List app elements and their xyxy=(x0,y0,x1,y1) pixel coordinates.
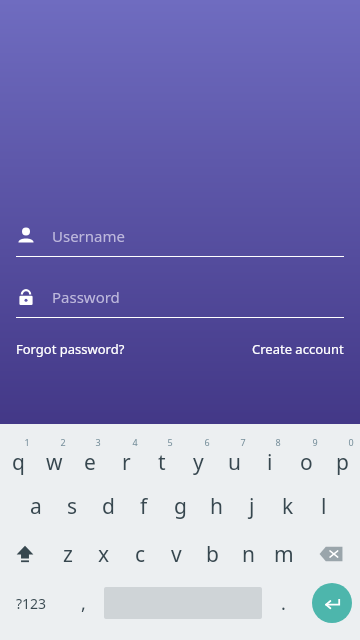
button[interactable]: n xyxy=(230,530,266,578)
button[interactable]: l xyxy=(306,482,342,530)
button[interactable]: Enter xyxy=(312,583,352,623)
staticText: s xyxy=(67,492,78,521)
staticText: p xyxy=(336,448,349,477)
button[interactable]: Shift xyxy=(0,530,50,578)
staticText: 5 xyxy=(167,436,173,448)
button[interactable]: Username xyxy=(16,219,344,253)
button[interactable]: 9 xyxy=(288,430,324,482)
button[interactable]: b xyxy=(194,530,230,578)
button[interactable]: 2 xyxy=(36,430,72,482)
button[interactable]: s xyxy=(54,482,90,530)
staticText: 2 xyxy=(60,436,66,448)
staticText: Create account xyxy=(252,340,344,358)
button[interactable]: 3 xyxy=(72,430,108,482)
staticText: c xyxy=(135,540,146,569)
button[interactable]: 1 xyxy=(0,430,36,482)
button[interactable]: Create account xyxy=(252,336,344,362)
button[interactable]: 7 xyxy=(216,430,252,482)
staticText: h xyxy=(210,492,223,521)
button[interactable]: d xyxy=(90,482,126,530)
staticText: e xyxy=(84,448,96,477)
staticText: Forgot password? xyxy=(16,340,125,358)
staticText: o xyxy=(300,448,313,477)
button[interactable]: z xyxy=(50,530,86,578)
staticText: Password xyxy=(52,287,120,307)
staticText: 3 xyxy=(95,436,101,448)
button[interactable]: 6 xyxy=(180,430,216,482)
staticText: r xyxy=(122,448,131,477)
button[interactable]: . xyxy=(262,578,304,628)
staticText: Username xyxy=(52,226,125,246)
staticText: 9 xyxy=(312,436,318,448)
button[interactable]: j xyxy=(234,482,270,530)
staticText: u xyxy=(228,448,241,477)
staticText: 1 xyxy=(24,436,30,448)
button[interactable]: Password xyxy=(16,280,344,314)
staticText: d xyxy=(102,492,115,521)
button[interactable]: c xyxy=(122,530,158,578)
staticText: l xyxy=(321,492,327,521)
staticText: f xyxy=(140,492,148,521)
staticText: a xyxy=(30,492,42,521)
button[interactable]: Forgot password? xyxy=(16,336,125,362)
staticText: v xyxy=(171,540,182,569)
staticText: z xyxy=(63,540,73,569)
staticText: . xyxy=(281,591,286,616)
staticText: j xyxy=(249,492,255,521)
staticText: i xyxy=(267,448,273,477)
staticText: 0 xyxy=(348,436,354,448)
button[interactable]: 8 xyxy=(252,430,288,482)
button[interactable]: ?123 xyxy=(0,578,62,628)
button[interactable]: 0 xyxy=(324,430,360,482)
staticText: 8 xyxy=(275,436,281,448)
button[interactable]: Backspace xyxy=(302,530,360,578)
staticText: n xyxy=(242,540,255,569)
button[interactable]: x xyxy=(86,530,122,578)
staticText: 4 xyxy=(132,436,138,448)
button[interactable]: f xyxy=(126,482,162,530)
button[interactable]: a xyxy=(18,482,54,530)
staticText: k xyxy=(282,492,294,521)
staticText: 6 xyxy=(204,436,210,448)
button[interactable]: k xyxy=(270,482,306,530)
staticText: ?123 xyxy=(16,594,47,613)
staticText: , xyxy=(81,591,86,616)
staticText: q xyxy=(12,448,25,477)
button[interactable]: 5 xyxy=(144,430,180,482)
staticText: x xyxy=(98,540,110,569)
button[interactable]: h xyxy=(198,482,234,530)
button[interactable]: 4 xyxy=(108,430,144,482)
button[interactable]: , xyxy=(62,578,104,628)
staticText: y xyxy=(193,448,204,477)
staticText: t xyxy=(158,448,166,477)
staticText: g xyxy=(174,492,187,521)
staticText: w xyxy=(46,448,63,477)
button[interactable]: v xyxy=(158,530,194,578)
staticText: 7 xyxy=(240,436,246,448)
button[interactable]: g xyxy=(162,482,198,530)
staticText: m xyxy=(274,540,294,569)
staticText: b xyxy=(206,540,219,569)
button[interactable]: m xyxy=(266,530,302,578)
